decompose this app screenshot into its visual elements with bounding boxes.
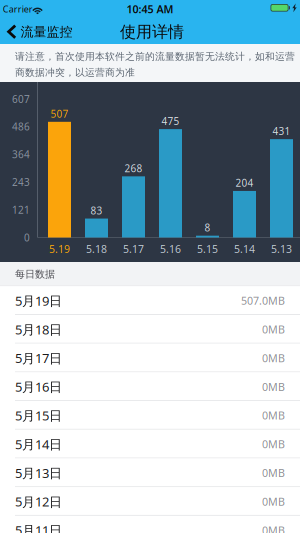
staticText: 流量监控 [20, 24, 72, 40]
staticText: 8 [204, 221, 210, 234]
button[interactable]: 5月13日 [0, 458, 300, 487]
staticText: 5月11日 [15, 521, 62, 533]
staticText: 243 [12, 175, 30, 189]
staticText: 5.19 [49, 242, 70, 256]
staticText: 5月19日 [15, 292, 62, 309]
staticText: 0MB [262, 379, 285, 394]
staticText: 5.14 [234, 242, 255, 256]
staticText: 507.0MB [241, 293, 285, 308]
button[interactable]: 5月17日 [0, 344, 300, 372]
staticText: 83 [90, 204, 102, 217]
staticText: 0MB [262, 408, 285, 423]
staticText: 每日数据 [15, 268, 55, 280]
staticText: 364 [12, 148, 30, 161]
staticText: 121 [12, 203, 30, 217]
staticText: 486 [12, 120, 30, 133]
staticText: 5月16日 [15, 378, 62, 396]
staticText: 204 [235, 176, 253, 190]
staticText: 607 [12, 92, 30, 106]
staticText: 5月13日 [15, 464, 62, 482]
staticText: 5.17 [123, 242, 144, 256]
staticText: 5月15日 [15, 407, 62, 424]
staticText: 5月12日 [15, 493, 62, 510]
button[interactable]: 返回 流量监控 [0, 20, 72, 44]
button[interactable]: 5月19日 [0, 286, 300, 315]
staticText: Carrier [3, 3, 33, 15]
staticText: 5月14日 [15, 435, 62, 453]
button[interactable]: 5月18日 [0, 315, 300, 344]
staticText: 5月18日 [15, 320, 62, 338]
staticText: 507 [50, 107, 68, 121]
staticText: 0MB [262, 523, 285, 533]
staticText: 431 [272, 124, 290, 138]
staticText: 0MB [262, 494, 285, 509]
staticText: 268 [124, 161, 142, 175]
button[interactable]: 5月14日 [0, 430, 300, 458]
staticText: 0MB [262, 437, 285, 451]
staticText: 商数据冲突，以运营商为准 [15, 66, 135, 79]
button[interactable]: 5月12日 [0, 487, 300, 516]
staticText: 5.15 [197, 242, 218, 256]
staticText: 0MB [262, 322, 285, 337]
staticText: 0MB [262, 466, 285, 480]
button[interactable]: 5月11日 [0, 516, 300, 533]
staticText: 使用详情 [120, 22, 184, 42]
staticText: 5.16 [160, 242, 181, 256]
staticText: 请注意，首次使用本软件之前的流量数据暂无法统计，如和运营 [15, 50, 295, 63]
staticText: 5月17日 [15, 349, 62, 367]
button[interactable]: 5月16日 [0, 372, 300, 401]
staticText: 0MB [262, 351, 285, 365]
staticText: 0 [24, 231, 30, 244]
button[interactable]: 5月15日 [0, 401, 300, 430]
staticText: 5.13 [271, 242, 292, 256]
staticText: 10:45 AM [126, 2, 173, 16]
staticText: 475 [161, 114, 179, 128]
staticText: 5.18 [86, 242, 107, 256]
